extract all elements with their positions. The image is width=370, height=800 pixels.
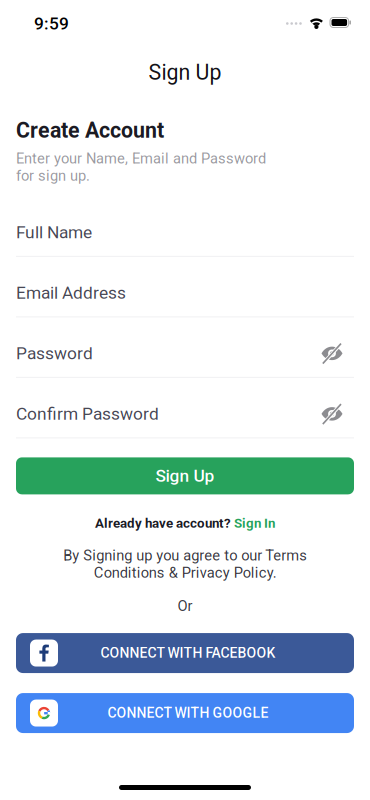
- staticText: Sign In: [234, 515, 275, 531]
- staticText: Email Address: [16, 283, 126, 303]
- button[interactable]: CONNECT WITH GOOGLE: [16, 693, 354, 733]
- staticText: Enter your Name, Email and Password for …: [16, 150, 266, 184]
- staticText: Or: [177, 597, 192, 615]
- staticText: 9:59: [34, 13, 69, 34]
- staticText: Password: [16, 343, 93, 363]
- button[interactable]: Show password: [321, 340, 354, 366]
- staticText: CONNECT WITH FACEBOOK: [100, 645, 275, 661]
- button[interactable]: Sign In: [234, 515, 275, 531]
- button[interactable]: Show confirm password: [321, 401, 354, 427]
- staticText: Create Account: [16, 118, 164, 143]
- staticText: By Signing up you agree to our Terms Con…: [63, 547, 307, 581]
- staticText: Already have account?: [95, 515, 234, 531]
- staticText: Sign Up: [148, 60, 221, 85]
- button[interactable]: Sign Up: [16, 457, 354, 494]
- staticText: Confirm Password: [16, 404, 159, 424]
- button[interactable]: CONNECT WITH FACEBOOK: [16, 633, 354, 673]
- staticText: CONNECT WITH GOOGLE: [107, 705, 268, 721]
- staticText: Full Name: [16, 222, 92, 242]
- staticText: Sign Up: [155, 466, 214, 486]
